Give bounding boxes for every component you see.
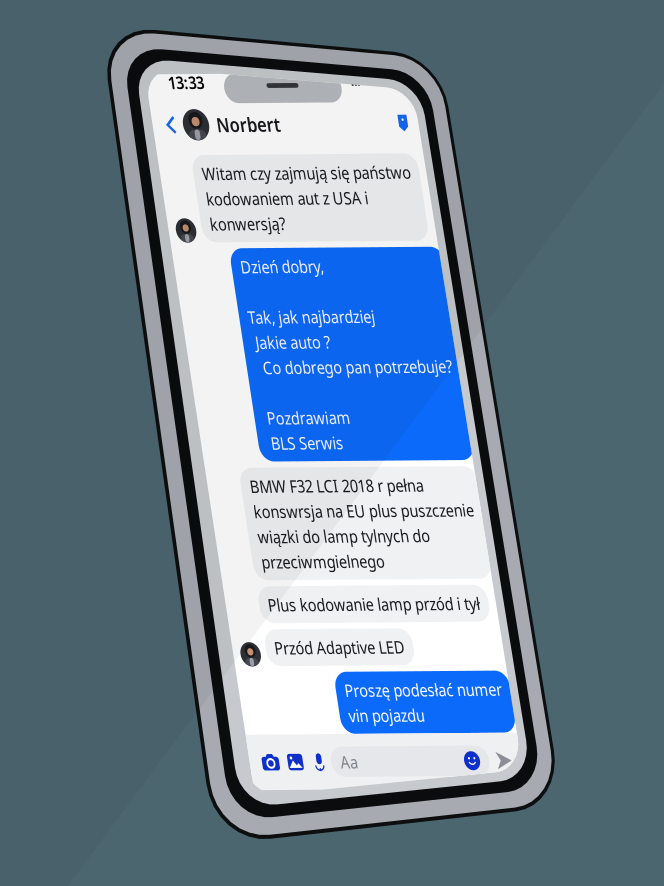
staticText: BLS Serwis bbox=[91, 412, 196, 439]
staticText: Norbert bbox=[88, 43, 176, 73]
staticText: wiązki do lamp tylnych do bbox=[58, 520, 296, 547]
staticText: kodowaniem aut z USA i bbox=[58, 130, 282, 157]
staticText: Dzień dobry, bbox=[91, 209, 206, 236]
button[interactable]: Saved replies bbox=[331, 41, 361, 75]
staticText: konwersją? bbox=[58, 160, 163, 186]
button[interactable]: Send bbox=[331, 772, 371, 816]
staticText: Co dobrego pan potrzebuje? bbox=[91, 325, 363, 352]
staticText: Proszę podesłać numer bbox=[146, 698, 363, 724]
staticText: Witam czy zajmują się państwo bbox=[58, 101, 346, 128]
staticText: przeciwmgielnego bbox=[58, 549, 228, 576]
button[interactable]: Aa bbox=[112, 776, 331, 811]
staticText: Przód Adaptive LED bbox=[58, 648, 238, 675]
staticText: Tak, jak najbardziej bbox=[91, 267, 266, 294]
staticText: vin pojazdu bbox=[146, 727, 251, 754]
staticText: Jakie auto ? bbox=[91, 296, 200, 323]
staticText: Plus kodowanie lamp przód i tył bbox=[58, 599, 351, 625]
staticText: konswrsja na EU plus puszczenie bbox=[58, 491, 362, 518]
staticText: Pozdrawiam bbox=[91, 383, 211, 410]
staticText: BMW F32 LCI 2018 r pełna bbox=[58, 462, 298, 489]
